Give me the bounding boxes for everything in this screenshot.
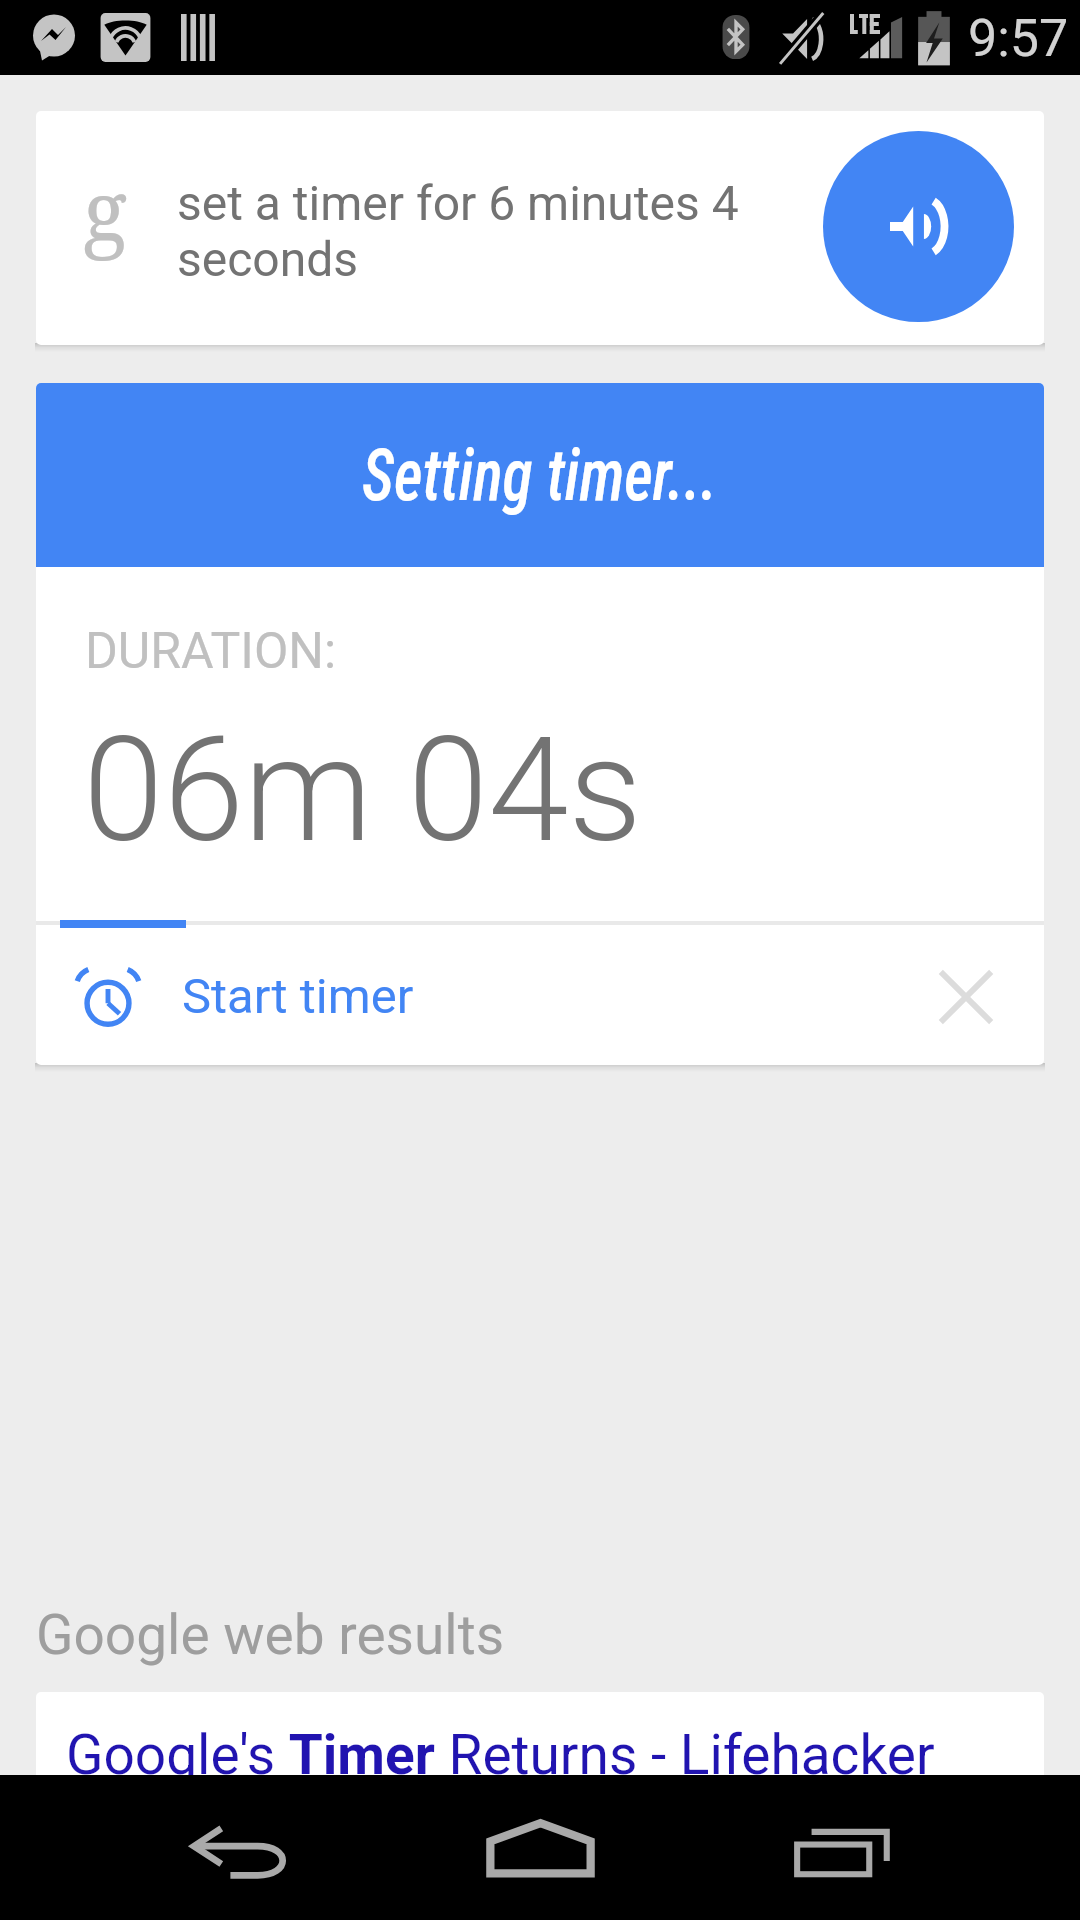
staticText: Start timer: [182, 968, 414, 1025]
button[interactable]: Recents: [713, 1775, 973, 1920]
button[interactable]: Play audio: [823, 131, 1014, 322]
button[interactable]: g: [36, 111, 1044, 345]
staticText: 9:57: [968, 8, 1069, 69]
button[interactable]: Back: [110, 1775, 370, 1920]
button[interactable]: Home: [410, 1775, 670, 1920]
button[interactable]: Close: [906, 937, 1026, 1057]
staticText: g: [83, 153, 128, 265]
staticText: 06m 04s: [83, 705, 643, 875]
staticText: set a timer for 6 minutes 4 seconds: [177, 175, 769, 288]
staticText: DURATION:: [85, 622, 337, 681]
staticText: Setting timer...: [362, 432, 718, 518]
button[interactable]: Start timer: [36, 928, 1044, 1065]
button[interactable]: Google's Timer Returns - Lifehacker: [36, 1692, 1044, 1852]
staticText: Google web results: [36, 1603, 505, 1667]
staticText: Google's Timer Returns - Lifehacker: [66, 1723, 935, 1787]
